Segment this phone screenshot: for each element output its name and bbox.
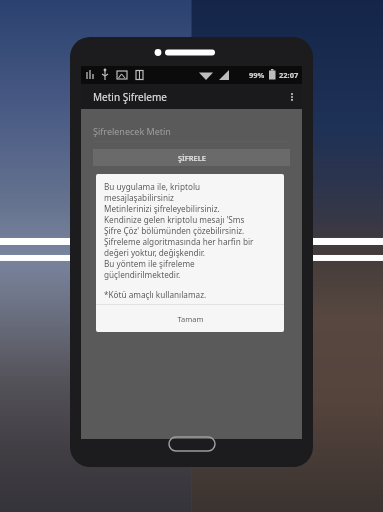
button[interactable]: Tamam	[96, 305, 284, 332]
staticText: Metin Şifreleme	[93, 90, 167, 104]
staticText: ŞİFRELE	[178, 153, 206, 163]
staticText: 22:07	[279, 70, 299, 80]
staticText: Şifre Çöz' bölümünden çözebilirsiniz.	[104, 225, 245, 236]
staticText: *Kötü amaçlı kullanılamaz.	[104, 289, 207, 300]
button[interactable]: More options	[282, 87, 302, 107]
staticText: Bu yöntem ile şifreleme	[104, 258, 195, 269]
staticText: Şifrelenecek Metin	[93, 125, 171, 137]
staticText: 99%	[249, 70, 265, 80]
staticText: Kendinize gelen kriptolu mesajı 'Sms	[104, 214, 245, 225]
staticText: değeri yoktur, değişkendir.	[104, 247, 206, 258]
staticText: mesajlaşabilirsiniz	[104, 192, 174, 203]
staticText: Şifreleme algoritmasında her harfin bir	[104, 236, 254, 247]
staticText: Tamam	[177, 314, 204, 324]
staticText: güçlendirilmektedir.	[104, 269, 181, 280]
staticText: Metinlerinizi şifreleyebilirsiniz.	[104, 203, 220, 214]
button[interactable]: ŞİFRELE	[93, 149, 290, 166]
button[interactable]: Şifrelenecek Metin	[93, 121, 290, 141]
staticText: Bu uygulama ile, kriptolu	[104, 181, 201, 192]
